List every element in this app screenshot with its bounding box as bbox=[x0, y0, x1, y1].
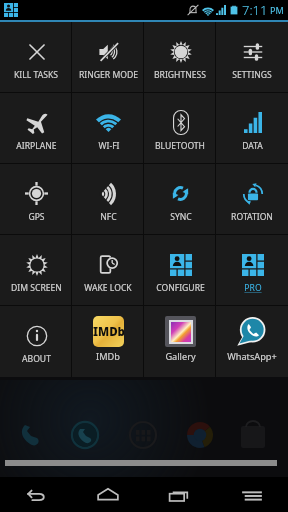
button[interactable]: Gallery bbox=[144, 306, 216, 377]
button[interactable]: ROTATION bbox=[216, 164, 288, 235]
staticText: DIM SCREEN bbox=[11, 282, 62, 294]
button[interactable]: WAKE LOCK bbox=[72, 235, 144, 306]
staticText: RINGER MODE bbox=[79, 69, 138, 81]
staticText: KILL TASKS bbox=[14, 69, 58, 81]
staticText: 7:11 bbox=[242, 1, 268, 19]
staticText: BLUETOOTH bbox=[155, 140, 205, 152]
staticText: AIRPLANE bbox=[16, 140, 57, 152]
button[interactable]: NFC bbox=[72, 164, 144, 235]
staticText: DATA bbox=[242, 140, 263, 152]
staticText: ROTATION bbox=[231, 211, 273, 223]
staticText: WhatsApp+ bbox=[227, 350, 277, 363]
button[interactable]: CONFIGURE bbox=[144, 235, 216, 306]
button[interactable]: BRIGHTNESS bbox=[144, 22, 216, 93]
button[interactable]: Back bbox=[0, 477, 72, 512]
staticText: BRIGHTNESS bbox=[154, 69, 206, 81]
button[interactable]: DIM SCREEN bbox=[0, 235, 72, 306]
button[interactable]: Home bbox=[72, 477, 144, 512]
staticText: ABOUT bbox=[22, 353, 51, 365]
button[interactable]: PRO bbox=[216, 235, 288, 306]
button[interactable]: BLUETOOTH bbox=[144, 93, 216, 164]
button[interactable]: SETTINGS bbox=[216, 22, 288, 93]
button[interactable]: IMDb bbox=[72, 306, 144, 377]
button[interactable]: RINGER MODE bbox=[72, 22, 144, 93]
button[interactable]: SYNC bbox=[144, 164, 216, 235]
staticText: CONFIGURE bbox=[156, 282, 205, 294]
button[interactable]: DATA bbox=[216, 93, 288, 164]
staticText: NFC bbox=[100, 211, 117, 223]
button[interactable]: WhatsApp+ bbox=[216, 306, 288, 377]
staticText: SYNC bbox=[170, 211, 192, 223]
staticText: WI-FI bbox=[98, 140, 120, 152]
staticText: SETTINGS bbox=[232, 69, 272, 81]
button[interactable]: Menu bbox=[216, 477, 288, 512]
button[interactable]: ABOUT bbox=[0, 306, 72, 377]
staticText: Gallery bbox=[165, 350, 196, 363]
button[interactable]: WI-FI bbox=[72, 93, 144, 164]
staticText: PRO bbox=[244, 282, 262, 294]
staticText: WAKE LOCK bbox=[84, 282, 132, 294]
button[interactable]: AIRPLANE bbox=[0, 93, 72, 164]
staticText: IMDb bbox=[93, 324, 124, 340]
staticText: IMDb bbox=[96, 350, 120, 363]
button[interactable]: GPS bbox=[0, 164, 72, 235]
button[interactable]: Recents bbox=[144, 477, 216, 512]
button[interactable]: KILL TASKS bbox=[0, 22, 72, 93]
staticText: GPS bbox=[28, 211, 45, 223]
staticText: PM bbox=[270, 4, 284, 16]
